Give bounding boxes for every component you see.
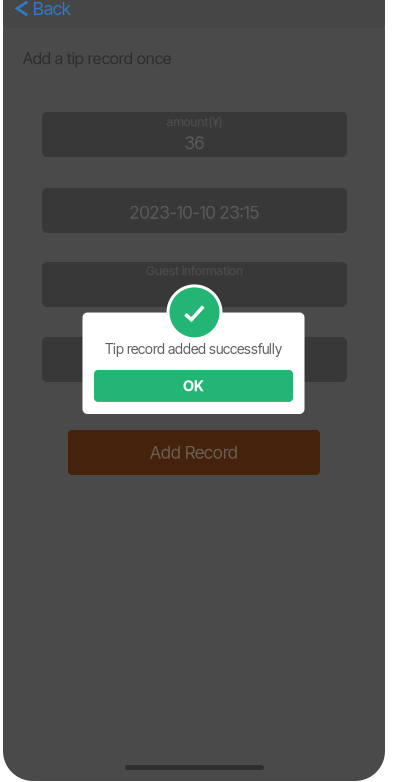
- staticText: amount(¥): [166, 114, 222, 129]
- button[interactable]: Add Record: [68, 430, 320, 475]
- staticText: Add Record: [150, 442, 238, 463]
- staticText: Guest information: [146, 263, 243, 278]
- staticText: Tip record added successfully: [105, 340, 282, 357]
- staticText: 36: [184, 132, 204, 153]
- button[interactable]: OK: [94, 370, 293, 402]
- staticText: OK: [183, 377, 204, 395]
- button[interactable]: Back: [15, 0, 83, 19]
- staticText: Back: [33, 0, 71, 19]
- staticText: Add a tip record once: [23, 49, 172, 68]
- staticText: 2023-10-10 23:15: [129, 202, 259, 223]
